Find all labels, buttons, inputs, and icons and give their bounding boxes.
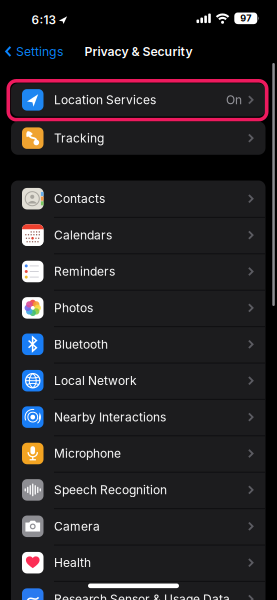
staticText: On — [226, 93, 242, 107]
staticText: Research Sensor & Usage Data — [54, 592, 230, 600]
button[interactable]: Nearby Interactions — [11, 399, 265, 435]
staticText: Bluetooth — [54, 337, 108, 351]
staticText: Privacy & Security — [84, 44, 192, 59]
staticText: Local Network — [54, 373, 137, 388]
button[interactable]: Calendars — [11, 217, 265, 253]
staticText: Reminders — [54, 264, 115, 279]
button[interactable]: Microphone — [11, 435, 265, 472]
button[interactable]: Reminders — [11, 253, 265, 290]
button[interactable]: Tracking — [11, 121, 265, 155]
staticText: 97 — [240, 13, 251, 24]
staticText: 6:13 — [31, 13, 55, 27]
button[interactable]: Health — [11, 544, 265, 581]
button[interactable]: Local Network — [11, 362, 265, 399]
button[interactable]: Location Services — [11, 83, 265, 116]
button[interactable]: Camera — [11, 508, 265, 544]
button[interactable]: Research Sensor & Usage Data — [11, 581, 265, 600]
staticText: Contacts — [54, 191, 105, 206]
staticText: Settings — [16, 44, 63, 59]
staticText: Photos — [54, 301, 93, 315]
staticText: Health — [54, 555, 91, 570]
staticText: Calendars — [54, 228, 112, 242]
button[interactable]: Contacts — [11, 180, 265, 217]
button[interactable]: Photos — [11, 290, 265, 326]
staticText: Tracking — [54, 131, 104, 145]
staticText: Nearby Interactions — [54, 410, 166, 424]
staticText: Location Services — [54, 93, 156, 107]
staticText: Speech Recognition — [54, 483, 167, 497]
button[interactable]: Bluetooth — [11, 326, 265, 362]
staticText: Camera — [54, 519, 100, 533]
button[interactable]: Speech Recognition — [11, 472, 265, 508]
button[interactable]: Settings — [5, 44, 63, 59]
staticText: Microphone — [54, 446, 121, 461]
